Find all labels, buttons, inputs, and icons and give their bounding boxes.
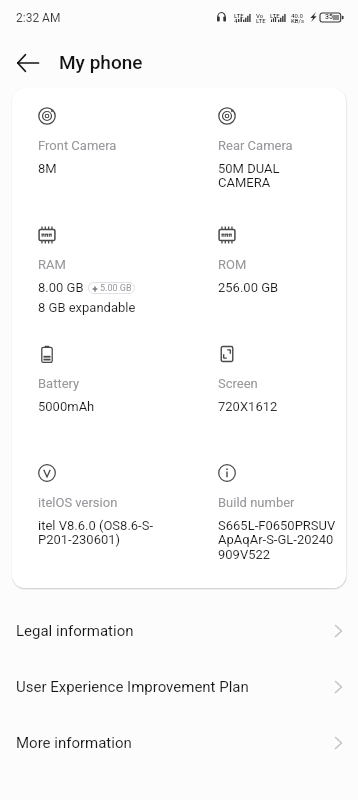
staticText: 50M DUAL CAMERA [218,161,280,191]
staticText: KB/s [291,17,305,24]
staticText: 8 GB expandable [38,300,136,315]
staticText: Build number [218,495,295,510]
staticText: 8M [38,161,57,176]
staticText: S665L-F0650PRSUV ApAqAr-S-GL-20240 909V5… [218,518,336,563]
staticText: Legal information [16,622,134,640]
staticText: LTE [270,12,280,19]
staticText: 40.0 [291,12,303,19]
staticText: 8.00 GB [38,280,84,295]
staticText: My phone [59,51,143,73]
staticText: LTE [256,17,266,24]
staticText: 5.00 GB [100,283,132,294]
staticText: 5000mAh [38,399,95,414]
staticText: Front Camera [38,138,117,153]
staticText: itelOS version [38,495,118,510]
staticText: ROM [218,257,247,272]
staticText: 2:32 AM [16,11,61,25]
staticText: Battery [38,376,80,391]
staticText: Vo [256,12,264,19]
staticText: Rear Camera [218,138,293,153]
staticText: More information [16,734,132,752]
button[interactable]: Back [6,41,50,85]
button[interactable]: Legal information [0,603,358,659]
staticText: 35 [325,13,333,21]
button[interactable]: More information [0,715,358,771]
staticText: User Experience Improvement Plan [16,678,249,696]
button[interactable]: User Experience Improvement Plan [0,659,358,715]
staticText: RAM [38,257,66,272]
staticText: LTE [234,12,244,19]
staticText: itel V8.6.0 (OS8.6-S- P201-230601) [38,518,154,548]
staticText: 720X1612 [218,399,278,414]
staticText: 4 [234,17,238,24]
staticText: Screen [218,376,258,391]
staticText: 256.00 GB [218,280,279,295]
